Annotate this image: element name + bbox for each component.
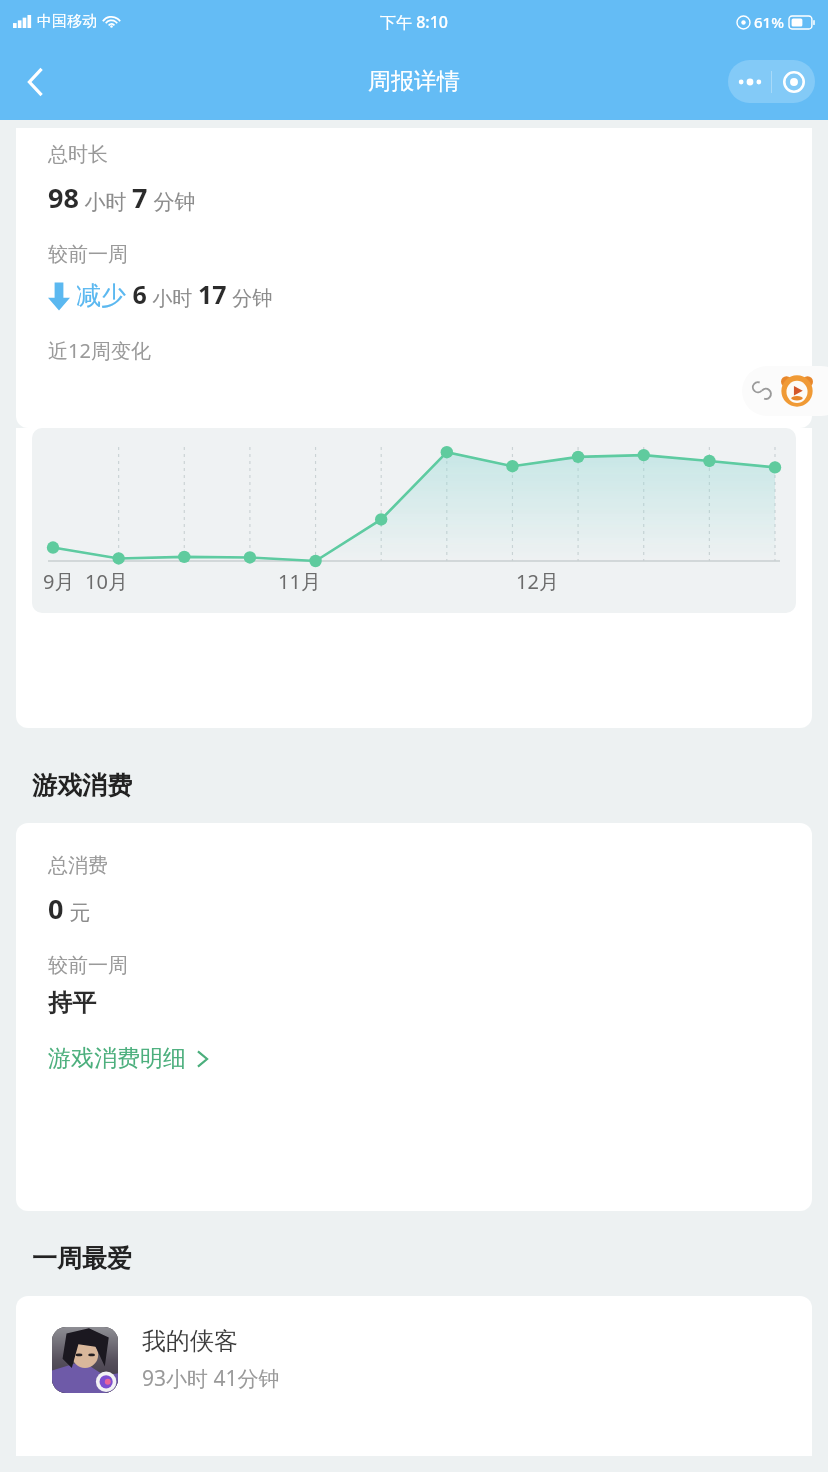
staticText: 一周最爱 <box>32 1243 132 1274</box>
staticText: 98 <box>48 179 79 216</box>
staticText: 0 <box>48 890 64 927</box>
button[interactable]: Shortcut link and profile <box>742 366 828 416</box>
button[interactable]: More options and Close <box>728 60 815 103</box>
staticText: 中国移动 <box>37 12 97 31</box>
staticText: 12月 <box>516 568 559 595</box>
staticText: 游戏消费明细 <box>48 1044 186 1073</box>
staticText: 9月 <box>43 568 75 595</box>
staticText: 近12周变化 <box>48 337 151 364</box>
staticText: 总时长 <box>48 142 108 167</box>
staticText: 分钟 <box>148 187 196 216</box>
staticText: 93小时 41分钟 <box>142 1364 280 1393</box>
staticText: 11月 <box>278 568 321 595</box>
staticText: 10月 <box>85 568 128 595</box>
staticText: 6 <box>126 277 147 311</box>
button[interactable]: 我的侠客 <box>16 1296 812 1456</box>
staticText: 游戏消费 <box>32 770 132 801</box>
staticText: 较前一周 <box>48 242 128 267</box>
staticText: 持平 <box>48 988 96 1018</box>
staticText: 小时 <box>147 284 198 311</box>
staticText: 下午 8:10 <box>380 11 448 33</box>
button[interactable]: Back <box>8 54 64 110</box>
staticText: 分钟 <box>227 284 273 311</box>
button[interactable]: 游戏消费明细 <box>48 1044 209 1073</box>
staticText: 7 <box>132 179 148 216</box>
staticText: 17 <box>198 277 227 311</box>
staticText: 较前一周 <box>48 953 128 978</box>
staticText: 减少 <box>76 280 126 311</box>
staticText: 周报详情 <box>368 67 460 96</box>
staticText: 61% <box>754 12 784 32</box>
staticText: 元 <box>64 898 91 927</box>
staticText: 总消费 <box>48 853 108 878</box>
staticText: 我的侠客 <box>142 1326 238 1356</box>
staticText: 小时 <box>79 187 132 216</box>
